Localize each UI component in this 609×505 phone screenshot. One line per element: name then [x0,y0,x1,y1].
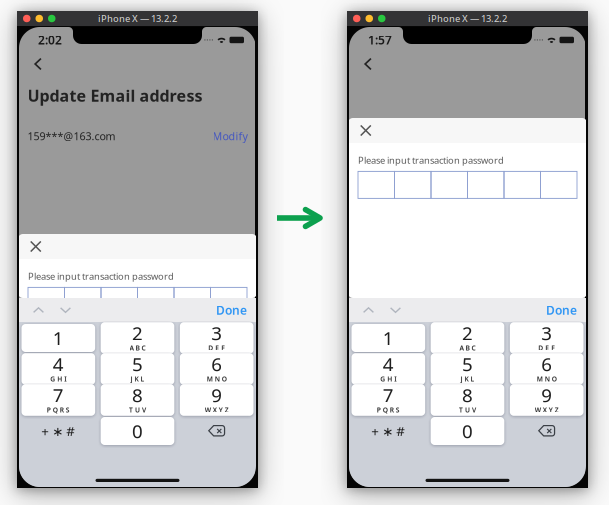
button[interactable]: 0 [431,417,504,445]
staticText: 3 [541,321,552,345]
staticText: P Q R S [377,405,400,414]
button[interactable]: 5 [431,355,504,383]
staticText: 7 [383,383,394,407]
staticText: 159***@163.com [27,129,115,143]
button[interactable]: 3 [510,324,583,352]
button[interactable]: Back [24,52,52,76]
staticText: iPhone X — 13.2.2 [428,12,507,25]
staticText: 6 [211,352,222,376]
staticText: Done [546,302,577,318]
staticText: 2 [132,321,143,345]
button[interactable]: Previous field [25,298,52,322]
button[interactable]: Delete [180,417,253,445]
button[interactable]: 8 [431,386,504,414]
staticText: 9 [211,383,222,407]
button[interactable]: 6 [510,355,583,383]
button[interactable]: Done [538,297,585,323]
button[interactable]: 2 [101,324,174,352]
button[interactable]: Close [348,118,371,143]
staticText: 4 [383,352,394,376]
staticText: + ∗ # [371,422,405,440]
staticText: J K L [130,374,144,383]
staticText: G H I [380,374,396,383]
button[interactable]: 4 [21,355,95,383]
staticText: 1:57 [368,32,392,48]
staticText: T U V [459,405,476,414]
staticText: J K L [460,374,474,383]
staticText: M N O [537,374,557,383]
button[interactable]: 8 [101,386,174,414]
staticText: D E F [538,343,555,352]
staticText: 3 [211,321,222,345]
staticText: 6 [541,352,552,376]
staticText: T U V [129,405,146,414]
staticText: 0 [132,419,143,443]
staticText: + ∗ # [41,422,75,440]
button[interactable]: + ∗ # [351,417,425,445]
button[interactable]: Modify [212,129,247,143]
button[interactable]: Next field [52,298,79,322]
staticText: Modify [212,129,247,143]
staticText: D E F [208,343,225,352]
button[interactable]: Done [208,297,255,323]
staticText: A B C [459,343,475,352]
button[interactable]: 9 [510,386,583,414]
staticText: 9 [541,383,552,407]
button[interactable]: Back [354,52,382,76]
staticText: 5 [132,352,143,376]
button[interactable]: 9 [180,386,253,414]
staticText: G H I [50,374,66,383]
button[interactable]: 3 [180,324,253,352]
button[interactable]: 7 [351,386,425,414]
button[interactable]: Delete [510,417,583,445]
staticText: 8 [132,383,143,407]
staticText: Done [216,302,247,318]
staticText: iPhone X — 13.2.2 [98,12,177,25]
staticText: 2:02 [38,32,62,48]
button[interactable]: 2 [431,324,504,352]
staticText: 8 [462,383,473,407]
button[interactable]: Next field [382,298,409,322]
staticText: 1 [53,326,64,350]
staticText: P Q R S [47,405,70,414]
button[interactable]: 1 [21,324,95,352]
staticText: 0 [462,419,473,443]
button[interactable]: 6 [180,355,253,383]
staticText: Update Email address [27,85,202,106]
staticText: 2 [462,321,473,345]
button[interactable]: Close [18,234,41,259]
staticText: 1 [383,326,394,350]
staticText: A B C [129,343,145,352]
staticText: 5 [462,352,473,376]
staticText: M N O [207,374,227,383]
button[interactable]: 5 [101,355,174,383]
staticText: 7 [53,383,64,407]
staticText: W X Y Z [535,405,559,414]
staticText: W X Y Z [205,405,229,414]
button[interactable]: 7 [21,386,95,414]
button[interactable]: Previous field [355,298,382,322]
button[interactable]: 0 [101,417,174,445]
staticText: 4 [53,352,64,376]
button[interactable]: 1 [351,324,425,352]
staticText: Please input transaction password [28,270,174,282]
button[interactable]: 4 [351,355,425,383]
staticText: Please input transaction password [358,154,504,166]
button[interactable]: + ∗ # [21,417,95,445]
